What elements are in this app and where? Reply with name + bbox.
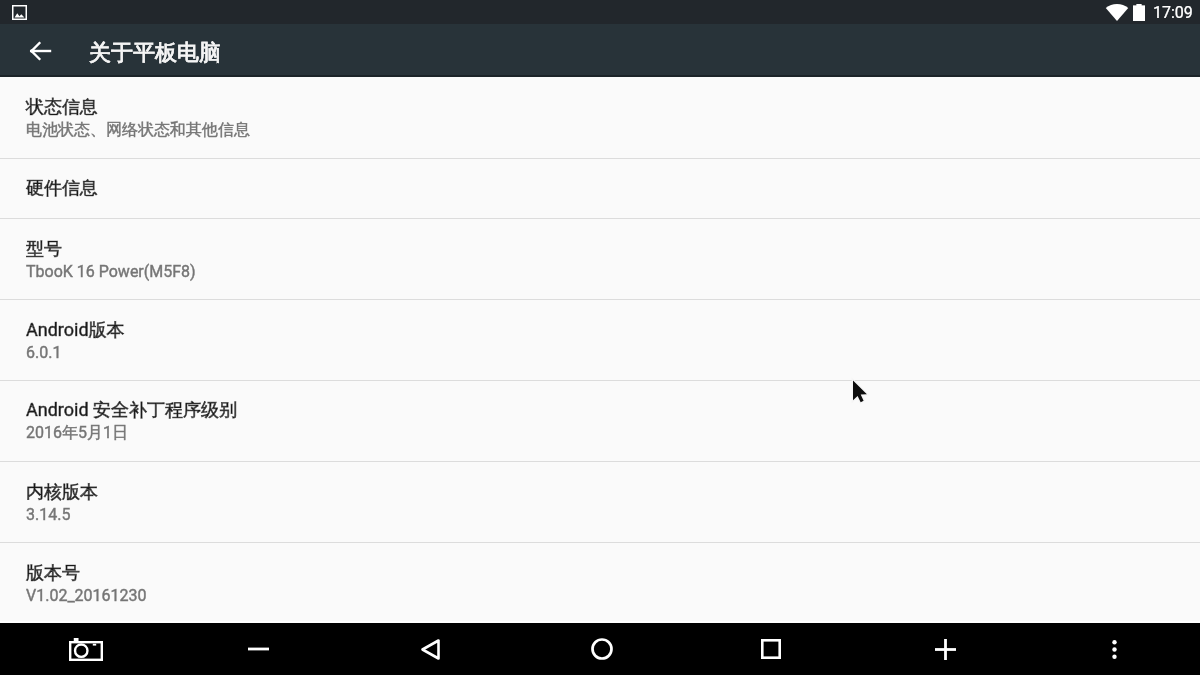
staticText: 内核版本: [26, 481, 98, 504]
staticText: 硬件信息: [26, 177, 98, 200]
staticText: Android 安全补丁程序级别: [26, 399, 238, 422]
staticText: Android版本: [26, 319, 125, 342]
staticText: 状态信息: [26, 96, 98, 119]
button[interactable]: 状态信息: [0, 77, 1200, 158]
staticText: 6.0.1: [26, 343, 62, 362]
button[interactable]: 型号: [0, 219, 1200, 299]
button[interactable]: Back: [0, 24, 80, 77]
staticText: 内核版本: [26, 481, 98, 504]
staticText: 2016年5月1日: [26, 423, 128, 443]
button[interactable]: Android版本: [0, 300, 1200, 380]
button[interactable]: Hide navigation bar: [172, 623, 344, 675]
staticText: 版本号: [26, 562, 80, 585]
staticText: 2016年5月1日: [26, 423, 128, 443]
button[interactable]: Back: [344, 623, 516, 675]
staticText: 电池状态、网络状态和其他信息: [26, 120, 250, 140]
staticText: 电池状态、网络状态和其他信息: [26, 120, 250, 140]
button[interactable]: 内核版本: [0, 462, 1200, 542]
button[interactable]: Add: [858, 623, 1029, 675]
button[interactable]: Screenshot: [0, 623, 172, 675]
staticText: 3.14.5: [26, 505, 71, 524]
staticText: TbooK 16 Power(M5F8): [26, 262, 196, 281]
staticText: 型号: [26, 238, 62, 261]
staticText: 6.0.1: [26, 343, 62, 362]
button[interactable]: 硬件信息: [0, 159, 1200, 218]
staticText: Android版本: [26, 319, 125, 342]
button[interactable]: 版本号: [0, 543, 1200, 623]
staticText: Android 安全补丁程序级别: [26, 399, 238, 422]
button[interactable]: Recent apps: [687, 623, 858, 675]
other: Screenshot saved: [12, 5, 27, 20]
button[interactable]: Android 安全补丁程序级别: [0, 381, 1200, 461]
staticText: 状态信息: [26, 96, 98, 119]
staticText: 关于平板电脑: [89, 39, 221, 67]
staticText: V1.02_20161230: [26, 586, 147, 605]
staticText: V1.02_20161230: [26, 586, 147, 605]
staticText: 硬件信息: [26, 177, 98, 200]
staticText: 3.14.5: [26, 505, 71, 524]
button[interactable]: More options: [1029, 623, 1200, 675]
staticText: 型号: [26, 238, 62, 261]
staticText: 关于平板电脑: [89, 39, 221, 67]
button[interactable]: Home: [516, 623, 687, 675]
staticText: 版本号: [26, 562, 80, 585]
staticText: 17:09: [1153, 3, 1193, 22]
staticText: TbooK 16 Power(M5F8): [26, 262, 196, 281]
